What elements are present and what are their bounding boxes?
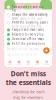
- staticText: Download offline maps: [12, 37, 44, 41]
- staticText: Charge the camera battery: [12, 13, 47, 16]
- button[interactable]: Pack sunscreen and sun hat: [4, 9, 52, 15]
- button[interactable]: Lists: [14, 59, 24, 66]
- button[interactable]: Download offline maps: [4, 37, 52, 41]
- button[interactable]: Adapters for every plug: [4, 32, 52, 37]
- button[interactable]: Passport and travel cards: [4, 27, 52, 32]
- button[interactable]: Refill the prescriptions: [4, 41, 52, 46]
- staticText: Print the boarding passes: [12, 21, 48, 24]
- staticText: Tap a line to tick it off: [7, 53, 37, 56]
- button[interactable]: Trips: [33, 59, 42, 66]
- button[interactable]: Print the boarding passes: [4, 21, 52, 27]
- staticText: Pack sunscreen and sun hat: [12, 5, 44, 12]
- staticText: Don't miss the essentials: [5, 69, 50, 87]
- button[interactable]: Search: [24, 59, 33, 66]
- staticText: Passport and travel cards: [12, 28, 44, 31]
- button[interactable]: Home: [5, 59, 14, 66]
- staticText: Adapters for every plug: [12, 33, 44, 36]
- staticText: so you don't burn on day one: [12, 13, 48, 20]
- staticText: Everything else can wait: [7, 47, 39, 51]
- staticText: checklists for each trip, for investors: [12, 89, 44, 100]
- staticText: Refill the prescriptions: [12, 42, 45, 45]
- button[interactable]: Profile: [42, 59, 51, 66]
- staticText: +: [44, 46, 48, 55]
- staticText: both legs of the trip: [12, 25, 42, 28]
- staticText: spare cards in the side pocket: [12, 17, 43, 24]
- button[interactable]: Add item: [43, 47, 50, 54]
- button[interactable]: Charge the camera battery: [4, 15, 52, 21]
